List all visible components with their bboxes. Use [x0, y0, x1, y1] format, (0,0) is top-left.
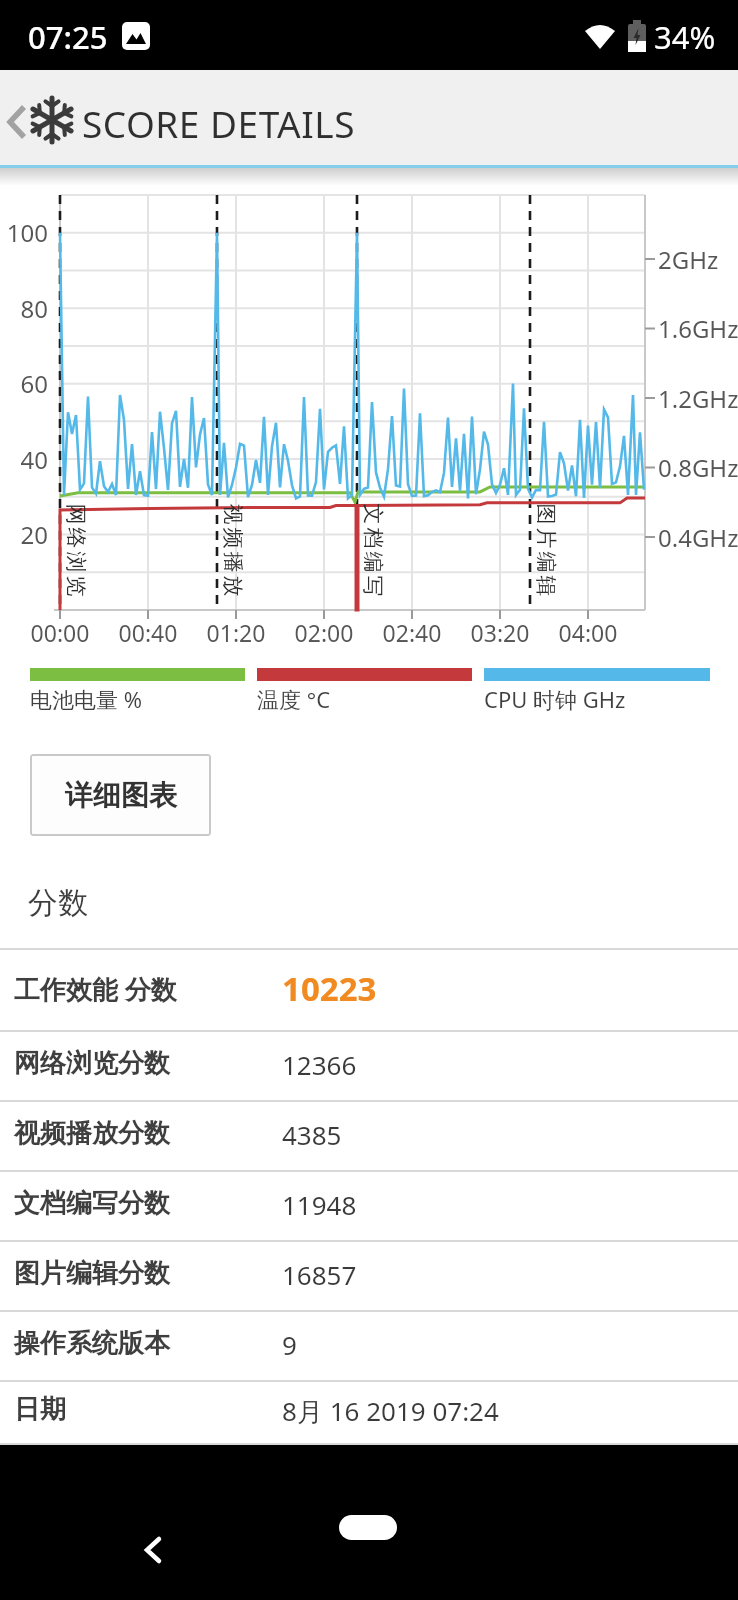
staticText: 02:40	[372, 617, 452, 648]
staticText: 频	[221, 527, 245, 548]
staticText: 02:00	[284, 617, 364, 648]
staticText: 工作效能 分数	[14, 971, 177, 1007]
button[interactable]: 视频播放分数	[0, 1100, 738, 1170]
staticText: 1.2GHz	[658, 382, 738, 415]
staticText: 40	[0, 443, 48, 476]
staticText: 12366	[282, 1047, 357, 1082]
staticText: 34%	[654, 16, 716, 58]
button[interactable]: 日期	[0, 1380, 738, 1443]
staticText: 辑	[534, 575, 558, 596]
staticText: 览	[64, 575, 88, 596]
staticText: 编	[534, 551, 558, 572]
button[interactable]: 详细图表	[30, 754, 211, 836]
staticText: 网络浏览分数	[14, 1047, 170, 1080]
staticText: 80	[0, 292, 48, 325]
button[interactable]	[140, 1536, 166, 1564]
staticText: 视	[221, 503, 245, 524]
button[interactable]	[6, 103, 28, 141]
staticText: 电池电量 %	[30, 684, 143, 714]
staticText: 操作系统版本	[14, 1327, 170, 1360]
button[interactable]: 工作效能 分数	[0, 948, 738, 1030]
staticText: 1.6GHz	[658, 312, 738, 345]
staticText: 8月 16 2019 07:24	[282, 1393, 499, 1429]
staticText: 2GHz	[658, 243, 719, 276]
staticText: 写	[361, 575, 385, 596]
staticText: 07:25	[28, 16, 108, 58]
staticText: 20	[0, 518, 48, 551]
button[interactable]: 图片编辑分数	[0, 1240, 738, 1310]
staticText: 4385	[282, 1117, 342, 1152]
staticText: 图片编辑分数	[14, 1257, 170, 1290]
staticText: 01:20	[196, 617, 276, 648]
staticText: 片	[534, 527, 558, 548]
button[interactable]: 操作系统版本	[0, 1310, 738, 1380]
staticText: 11948	[282, 1187, 357, 1222]
staticText: 详细图表	[65, 778, 177, 813]
staticText: 60	[0, 367, 48, 400]
staticText: 00:00	[20, 617, 100, 648]
staticText: 分数	[28, 884, 88, 922]
staticText: 文	[361, 503, 385, 524]
staticText: 播	[221, 551, 245, 572]
button[interactable]	[339, 1515, 397, 1540]
staticText: 图	[534, 503, 558, 524]
staticText: 04:00	[548, 617, 628, 648]
staticText: 编	[361, 551, 385, 572]
staticText: 文档编写分数	[14, 1187, 170, 1220]
staticText: 16857	[282, 1257, 357, 1292]
staticText: 0.8GHz	[658, 451, 738, 484]
staticText: 00:40	[108, 617, 188, 648]
staticText: 放	[221, 575, 245, 596]
staticText: CPU 时钟 GHz	[484, 684, 626, 714]
staticText: 100	[0, 216, 48, 249]
staticText: SCORE DETAILS	[82, 98, 356, 148]
staticText: 日期	[14, 1393, 66, 1426]
staticText: 10223	[282, 966, 377, 1011]
staticText: 络	[64, 527, 88, 548]
staticText: 网	[64, 503, 88, 524]
button[interactable]: 网络浏览分数	[0, 1030, 738, 1100]
staticText: 温度 °C	[257, 684, 331, 714]
staticText: 视频播放分数	[14, 1117, 170, 1150]
staticText: 浏	[64, 551, 88, 572]
staticText: 03:20	[460, 617, 540, 648]
button[interactable]: 文档编写分数	[0, 1170, 738, 1240]
staticText: 档	[361, 527, 385, 548]
staticText: 9	[282, 1327, 297, 1362]
staticText: 0.4GHz	[658, 521, 738, 554]
